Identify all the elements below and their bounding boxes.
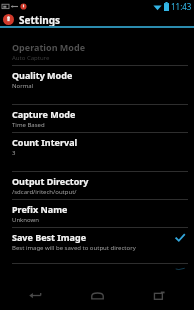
button[interactable]: Home [75, 280, 119, 310]
button[interactable]: Count Interval [0, 133, 194, 171]
button[interactable]: Toggle Check Deduplication [174, 268, 186, 270]
button[interactable]: Settings [0, 13, 194, 26]
button[interactable]: Quality Mode [0, 66, 194, 104]
staticText: Normal [12, 82, 34, 90]
button[interactable]: Capture Mode [0, 105, 194, 132]
staticText: /sdcard/iritech/output/ [12, 188, 77, 196]
staticText: Quality Mode [12, 69, 73, 81]
button[interactable]: Operation Mode [0, 38, 194, 65]
staticText: Best image will be saved to output direc… [12, 244, 136, 252]
staticText: Unknown [12, 216, 39, 224]
staticText: Settings [19, 13, 60, 26]
button[interactable]: Save Best Image [0, 228, 194, 263]
button[interactable]: Back [13, 280, 57, 310]
staticText: Save Best Image [12, 231, 87, 243]
staticText: 3 [12, 149, 16, 157]
staticText: Count Interval [12, 136, 78, 148]
button[interactable]: Prefix Name [0, 200, 194, 227]
staticText: Prefix Name [12, 203, 68, 215]
button[interactable]: Check Deduplication [0, 264, 194, 280]
staticText: Operation Mode [12, 41, 85, 53]
staticText: Auto Capture [12, 54, 50, 62]
staticText: Time Based [12, 121, 45, 129]
staticText: Capture Mode [12, 108, 76, 120]
button[interactable]: Output Directory [0, 172, 194, 199]
staticText: Output Directory [12, 175, 89, 187]
staticText: 11:43 [171, 1, 192, 12]
button[interactable]: Toggle Save Best Image [174, 232, 186, 244]
button[interactable]: Recent apps [137, 280, 181, 310]
